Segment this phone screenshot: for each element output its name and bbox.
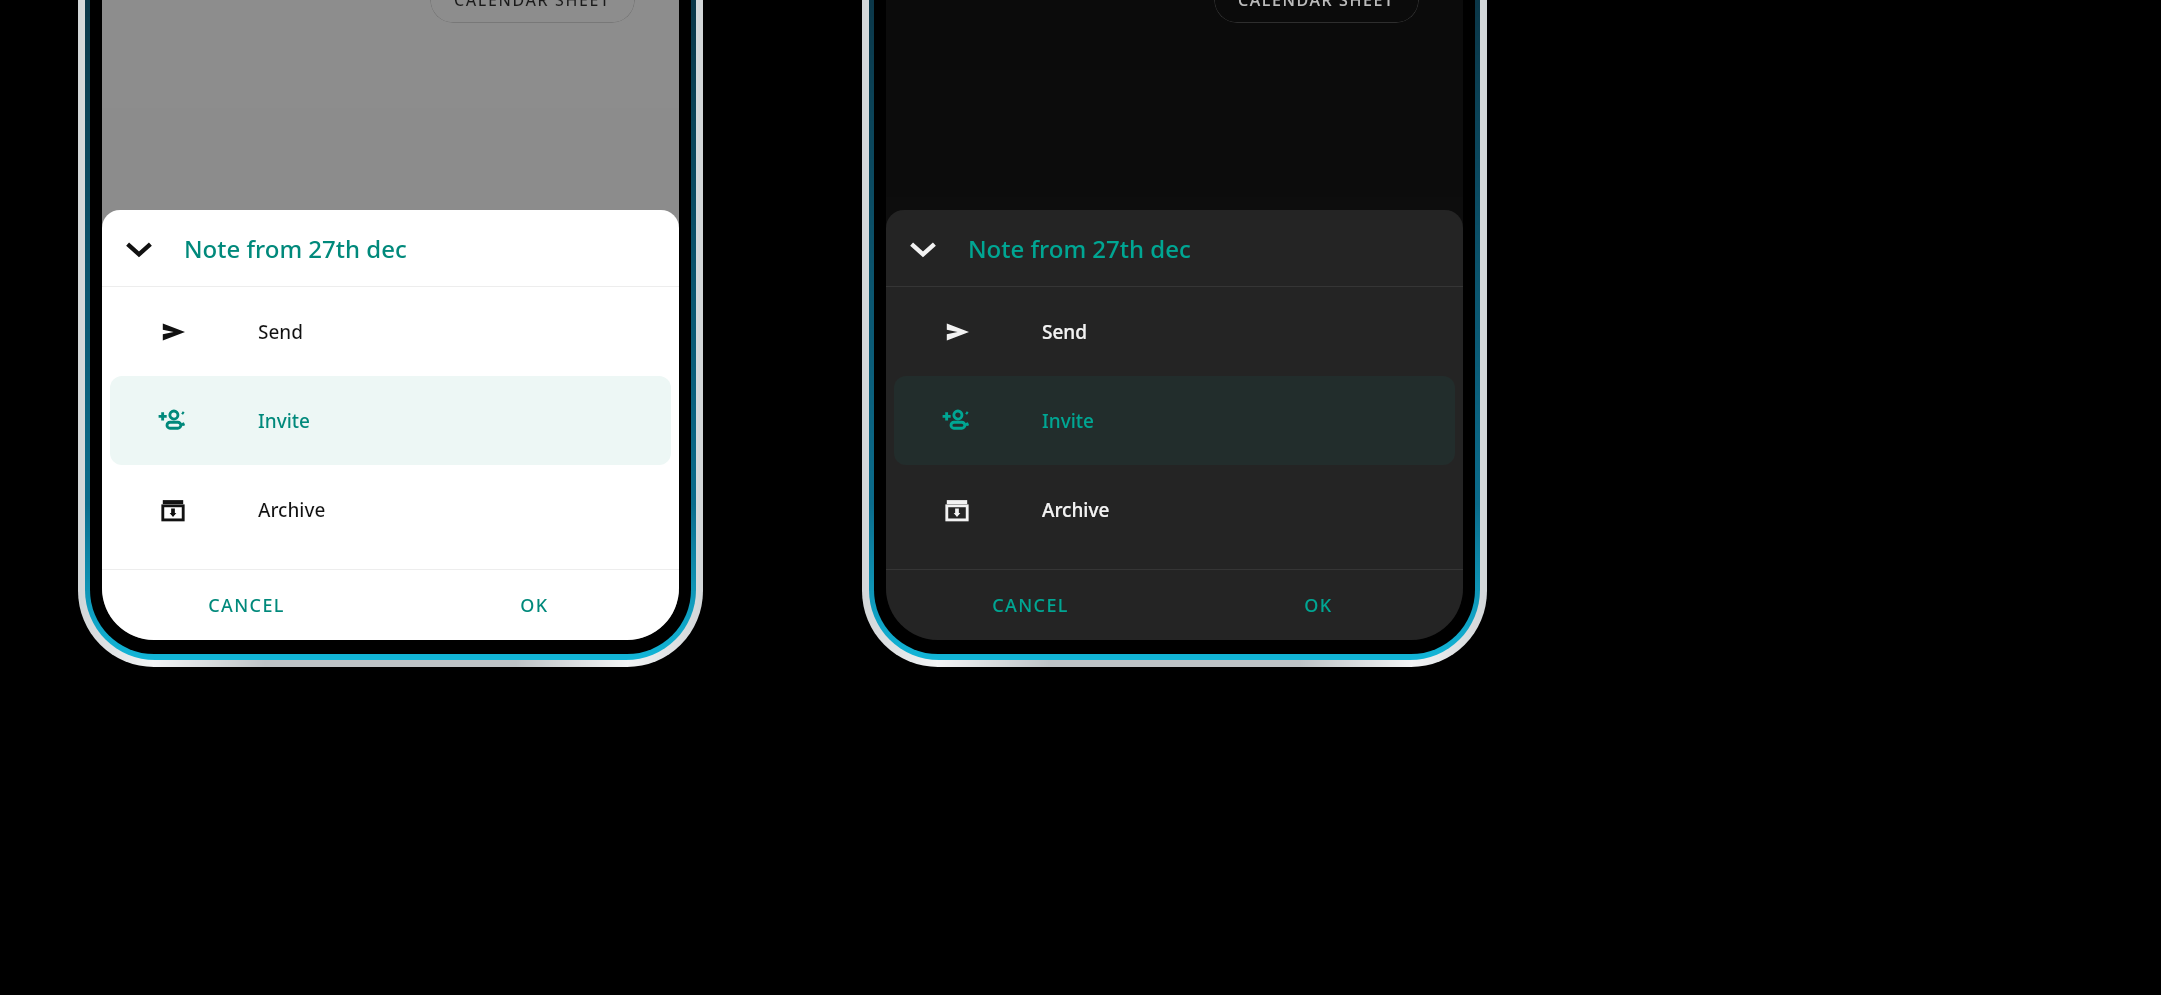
button[interactable]: CANCEL (886, 570, 1174, 640)
staticText: Note from 27th dec (968, 232, 1191, 265)
staticText: Invite (258, 408, 310, 434)
staticText: OK (520, 593, 549, 618)
button[interactable]: OK (1174, 570, 1463, 640)
staticText: Archive (258, 497, 326, 523)
staticText: Send (1042, 319, 1088, 345)
staticText: Archive (1042, 497, 1110, 523)
button[interactable]: Archive (894, 465, 1455, 554)
button[interactable]: Collapse (120, 229, 158, 267)
staticText: Note from 27th dec (184, 232, 407, 265)
button[interactable]: OK (390, 570, 679, 640)
button[interactable]: Send (110, 287, 671, 376)
button[interactable]: Collapse (102, 210, 679, 286)
button[interactable]: CALENDAR SHEET (430, 0, 635, 23)
button[interactable]: CALENDAR SHEET (1214, 0, 1419, 23)
staticText: CANCEL (992, 593, 1069, 618)
button[interactable]: Invite (110, 376, 671, 465)
button[interactable]: Invite (894, 376, 1455, 465)
staticText: Invite (1042, 408, 1094, 434)
staticText: CANCEL (208, 593, 285, 618)
staticText: Send (258, 319, 304, 345)
button[interactable]: Collapse (886, 210, 1463, 286)
button[interactable]: Archive (110, 465, 671, 554)
staticText: OK (1304, 593, 1333, 618)
staticText: CALENDAR SHEET (454, 0, 611, 11)
staticText: CALENDAR SHEET (1238, 0, 1395, 11)
button[interactable]: CANCEL (102, 570, 390, 640)
button[interactable]: Send (894, 287, 1455, 376)
button[interactable]: Collapse (904, 229, 942, 267)
